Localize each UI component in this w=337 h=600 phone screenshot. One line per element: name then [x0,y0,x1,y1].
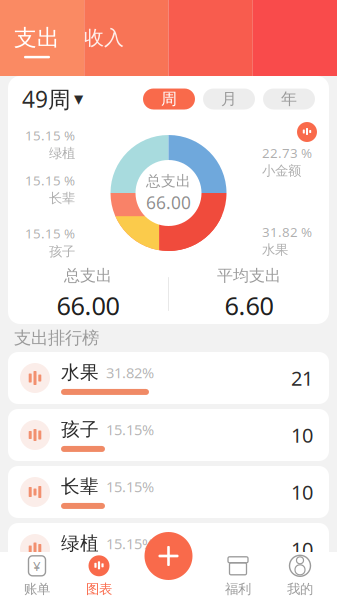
staticText: 收入 [84,26,124,50]
staticText: 10 [291,536,313,562]
button[interactable]: 长辈 [8,466,329,518]
staticText: 总支出 [146,172,191,190]
staticText: 10 [291,422,313,448]
staticText: 15.15 % [25,171,75,189]
staticText: 绿植 [49,145,75,161]
staticText: 长辈 [61,475,99,498]
staticText: 31.82% [106,363,154,382]
button[interactable]: 图表 [68,554,130,598]
staticText: 账单 [24,581,50,597]
staticText: 小金额 [262,163,301,179]
staticText: 15.15% [106,534,154,553]
button[interactable]: 新增记账 [144,532,192,580]
staticText: 水果 [61,361,99,384]
staticText: 孩子 [61,418,99,441]
button[interactable]: 我的 [269,554,331,598]
staticText: 15.15% [106,420,154,439]
staticText: 周 [161,89,177,109]
staticText: 支出排行榜 [14,327,99,349]
staticText: 66.00 [146,191,191,214]
button[interactable]: 水果 [8,352,329,404]
staticText: 绿植 [61,532,99,555]
button[interactable]: 收入 [84,26,124,57]
staticText: 我的 [287,581,313,597]
button[interactable]: 孩子 [8,409,329,461]
staticText: 21 [291,365,313,391]
staticText: 图表 [86,581,112,597]
staticText: ¥ [33,557,41,575]
staticText: 支出 [14,24,60,52]
staticText: 31.82 % [262,223,312,241]
staticText: 平均支出 [217,266,281,286]
button[interactable]: 49周 [22,84,83,114]
staticText: 年 [281,89,297,109]
staticText: 66.00 [56,288,119,322]
staticText: 15.15% [106,477,154,496]
staticText: 15.15 % [25,224,75,242]
staticText: 15.15 % [25,126,75,144]
staticText: 月 [221,89,237,109]
button[interactable]: 周 [143,88,195,109]
button[interactable]: 支出 [14,24,60,58]
staticText: 长辈 [49,190,75,207]
staticText: 10 [291,479,313,505]
button[interactable]: ¥ [6,554,68,598]
staticText: 6.60 [224,288,273,322]
staticText: ▼ [74,92,83,106]
staticText: 22.73 % [262,144,312,162]
staticText: 福利 [225,581,251,597]
staticText: 总支出 [64,266,112,286]
button[interactable]: 年 [263,88,315,109]
button[interactable]: 绿植 [8,523,329,575]
button[interactable]: 切换图表 [297,122,317,142]
button[interactable]: 福利 [207,554,269,598]
staticText: 孩子 [49,243,75,260]
staticText: 49周 [22,84,71,114]
button[interactable]: 月 [203,88,255,109]
staticText: 水果 [262,242,288,258]
